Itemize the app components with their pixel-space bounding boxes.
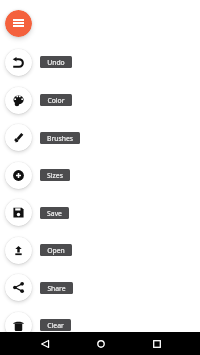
button[interactable]: Undo [40, 56, 72, 68]
staticText: Share [47, 284, 66, 293]
button[interactable]: Clear [5, 312, 32, 339]
button[interactable]: Share [40, 282, 73, 294]
button[interactable]: Brushes [5, 124, 32, 151]
button[interactable]: Color [40, 94, 72, 106]
staticText: Undo [47, 58, 65, 67]
button[interactable]: Share [5, 274, 32, 301]
button[interactable]: Clear [40, 319, 71, 331]
staticText: Clear [47, 321, 64, 330]
button[interactable]: Save [40, 207, 69, 219]
button[interactable]: Open [40, 244, 72, 256]
button[interactable]: Undo [5, 49, 32, 76]
staticText: Save [47, 209, 62, 218]
button[interactable]: Open [5, 237, 32, 264]
button[interactable]: Home [89, 332, 112, 355]
button[interactable]: Back [33, 332, 56, 355]
button[interactable]: Open actions menu [5, 10, 32, 37]
button[interactable]: Sizes [40, 169, 70, 181]
button[interactable]: Brushes [40, 132, 80, 144]
button[interactable]: Recent apps [145, 332, 168, 355]
staticText: Brushes [47, 134, 73, 143]
staticText: Open [47, 246, 65, 255]
staticText: Sizes [47, 171, 63, 180]
staticText: Color [47, 96, 65, 105]
button[interactable]: Save [5, 199, 32, 226]
button[interactable]: Sizes [5, 162, 32, 189]
button[interactable]: Color [5, 87, 32, 114]
